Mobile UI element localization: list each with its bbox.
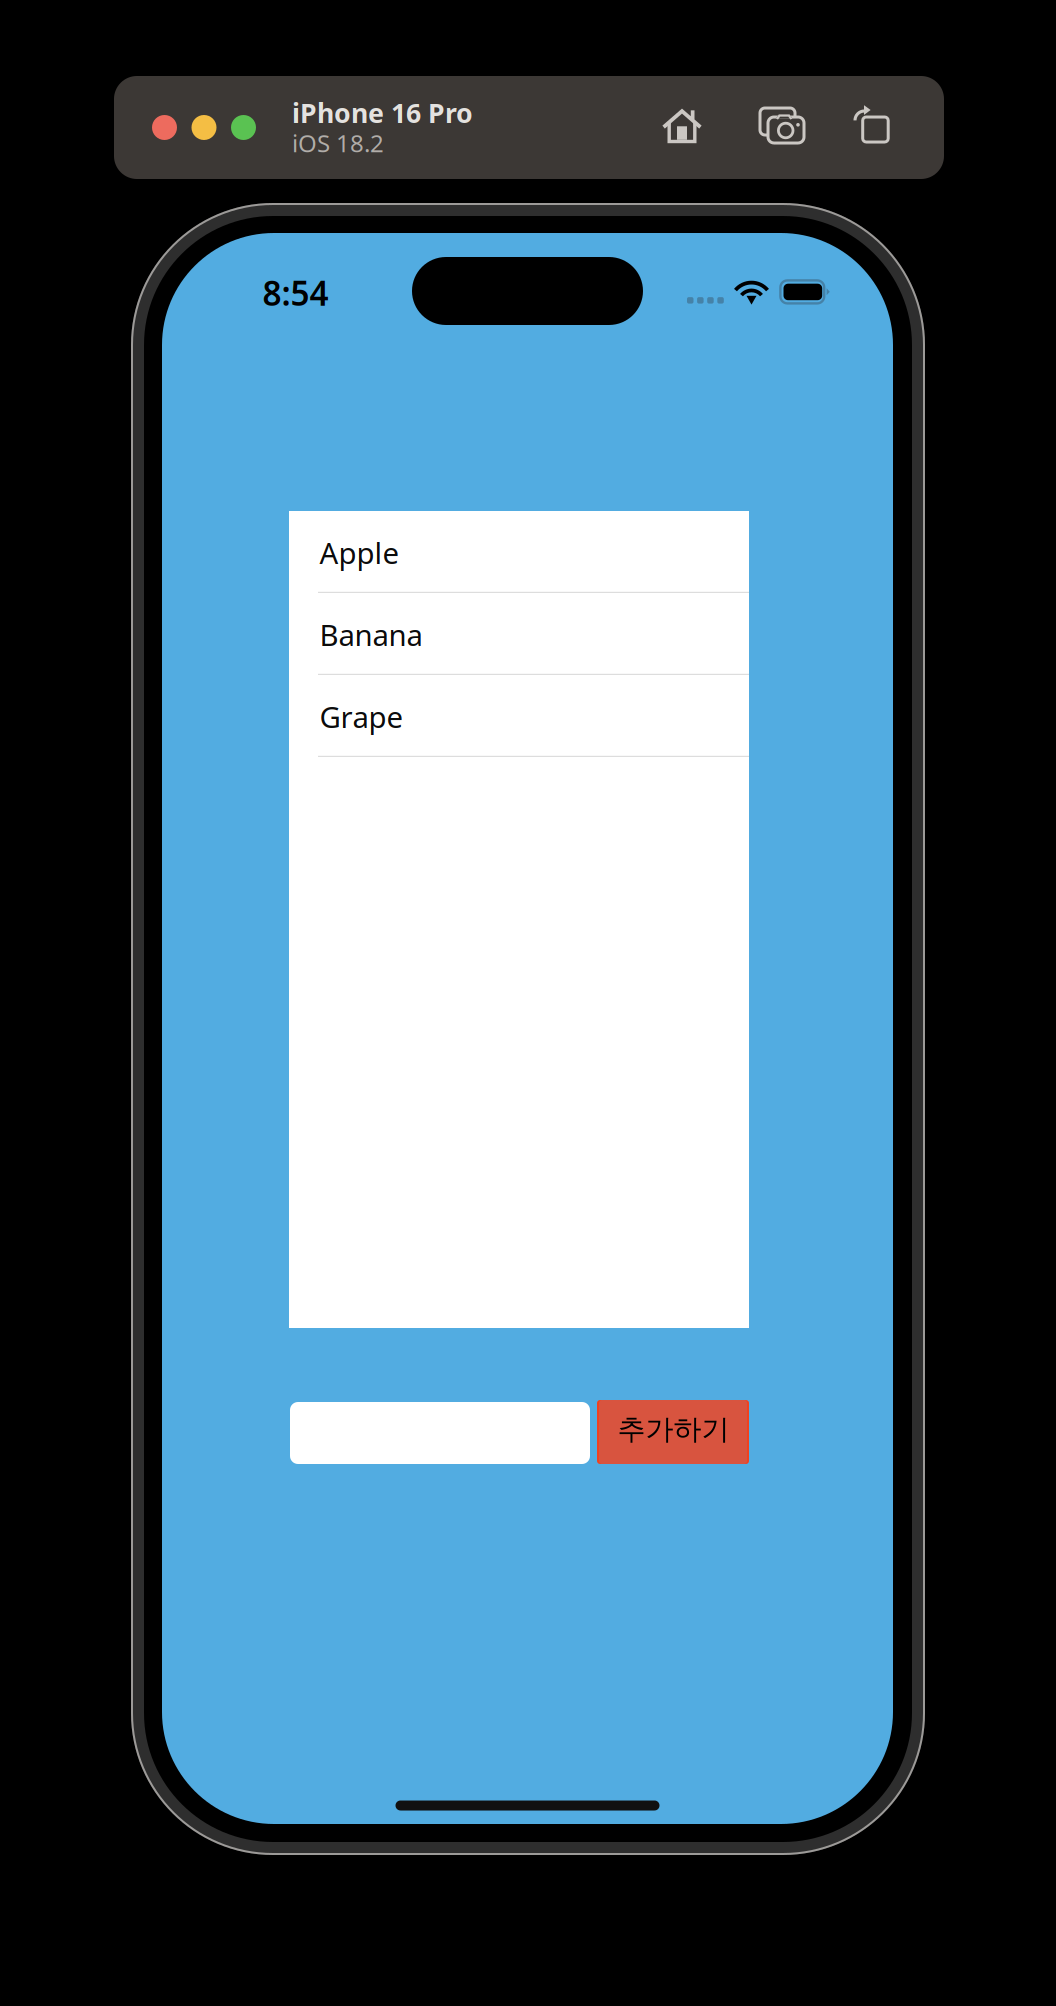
button[interactable]: New item: [290, 1402, 590, 1464]
staticText: Apple: [320, 533, 400, 572]
staticText: Banana: [320, 615, 423, 654]
button[interactable]: Rotate: [843, 97, 901, 155]
staticText: iOS 18.2: [292, 127, 384, 159]
staticText: iPhone 16 Pro: [292, 95, 473, 130]
staticText: Grape: [320, 697, 404, 736]
button[interactable]: Grape: [289, 675, 749, 757]
staticText: 8:54: [262, 271, 328, 315]
button[interactable]: Apple: [289, 511, 749, 593]
button[interactable]: 추가하기: [597, 1400, 749, 1464]
button[interactable]: Screenshot: [752, 97, 810, 155]
button[interactable]: Banana: [289, 593, 749, 675]
button[interactable]: Home: [653, 97, 711, 155]
staticText: 추가하기: [617, 1412, 729, 1447]
